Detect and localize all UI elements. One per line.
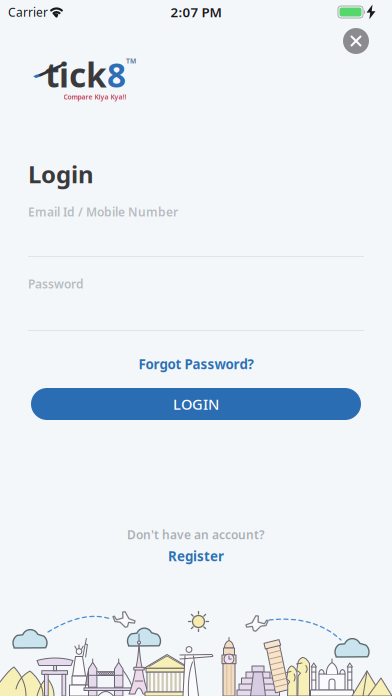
staticText: LOGIN	[173, 394, 219, 414]
staticText: 8	[107, 52, 126, 97]
staticText: 2:07 PM	[170, 3, 221, 21]
staticText: Password	[28, 276, 84, 292]
staticText: Carrier	[8, 4, 48, 20]
button[interactable]: Close	[343, 28, 369, 54]
button[interactable]: LOGIN	[31, 388, 361, 420]
button[interactable]: Password	[28, 273, 364, 331]
button[interactable]: Email Id / Mobile Number	[28, 201, 364, 257]
button[interactable]: Forgot Password?	[138, 355, 253, 373]
staticText: Compare Kiya Kya!!	[63, 93, 126, 101]
button[interactable]: Register	[168, 547, 224, 565]
staticText: Email Id / Mobile Number	[28, 204, 178, 220]
staticText: TM	[126, 56, 136, 65]
staticText: Don't have an account?	[127, 526, 265, 542]
staticText: Register	[168, 547, 224, 565]
staticText: Login	[28, 158, 94, 190]
staticText: tick	[45, 52, 107, 97]
staticText: Forgot Password?	[138, 355, 253, 373]
